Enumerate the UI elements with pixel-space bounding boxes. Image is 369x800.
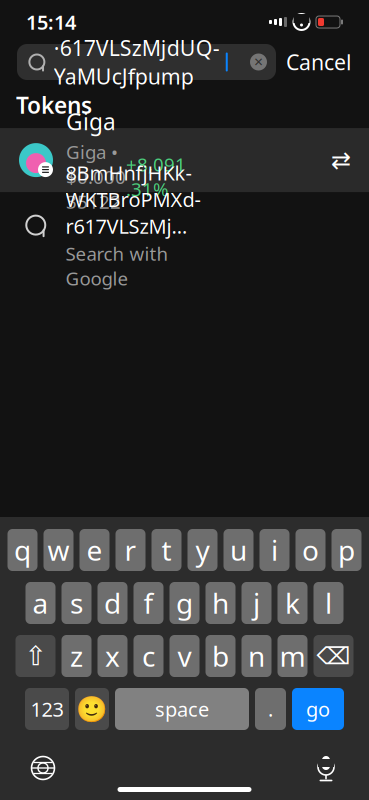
staticText: h [212, 584, 229, 622]
staticText: l [325, 584, 332, 622]
button[interactable]: m [277, 635, 307, 677]
staticText: w [47, 531, 69, 569]
staticText: ⌫ [316, 642, 350, 670]
staticText: x [105, 637, 120, 675]
staticText: y [195, 531, 209, 569]
button[interactable]: Cancel [286, 48, 352, 76]
staticText: ⇧ [24, 641, 46, 671]
button[interactable]: Clear text [250, 53, 267, 70]
button[interactable]: Shift [15, 635, 55, 677]
button[interactable]: k [277, 582, 307, 624]
staticText: i [271, 531, 278, 569]
staticText: u [230, 531, 247, 569]
button[interactable]: Emoji [75, 688, 109, 730]
staticText: j [253, 584, 260, 622]
staticText: t [161, 531, 171, 569]
button[interactable]: c [133, 635, 163, 677]
button[interactable]: q [7, 529, 37, 571]
staticText: e [86, 531, 102, 569]
staticText: Cancel [286, 48, 352, 76]
staticText: z [70, 637, 83, 675]
button[interactable]: . [255, 688, 286, 730]
staticText: 8BmHnfjHKkWKTBroPMXdr617VLSzMj… [65, 159, 200, 239]
button[interactable]: n [241, 635, 271, 677]
button[interactable]: y [187, 529, 217, 571]
button[interactable]: l [313, 582, 343, 624]
staticText: o [302, 531, 319, 569]
button[interactable]: Dictation [309, 751, 343, 785]
staticText: r [124, 531, 136, 569]
staticText: 🙂 [76, 694, 108, 723]
staticText: Tokens [16, 90, 92, 120]
button[interactable]: 8BmHnfjHKkWKTBroPMXdr617VLSzMj… [0, 192, 369, 258]
staticText: n [248, 637, 265, 675]
button[interactable]: w [43, 529, 73, 571]
button[interactable]: a [25, 582, 55, 624]
staticText: f [143, 584, 153, 622]
staticText: Giga [66, 106, 116, 136]
button[interactable]: i [259, 529, 289, 571]
staticText: go [306, 696, 330, 722]
button[interactable]: 123 [25, 688, 69, 730]
button[interactable]: x [97, 635, 127, 677]
button[interactable]: Delete [313, 635, 353, 677]
button[interactable]: z [61, 635, 91, 677]
button[interactable]: t [151, 529, 181, 571]
staticText: g [176, 584, 193, 622]
button[interactable]: space [115, 688, 249, 730]
staticText: k [285, 584, 300, 622]
button[interactable]: f [133, 582, 163, 624]
staticText: q [14, 531, 31, 569]
staticText: space [155, 696, 209, 722]
staticText: Giga • $0.00035122 [66, 139, 126, 214]
staticText: . [268, 696, 273, 722]
button[interactable]: Next keyboard [26, 751, 60, 785]
staticText: 15:14 [26, 9, 76, 35]
staticText: a [32, 584, 48, 622]
staticText: s [70, 584, 83, 622]
button[interactable]: p [331, 529, 361, 571]
staticText: +8,091.31% [126, 152, 186, 201]
button[interactable]: go [292, 688, 344, 730]
staticText: ·617VLSzMjdUQYaMUcJfpump [54, 34, 220, 90]
staticText: Search with Google [65, 241, 168, 291]
button[interactable]: o [295, 529, 325, 571]
button[interactable]: e [79, 529, 109, 571]
button[interactable]: b [205, 635, 235, 677]
staticText: b [212, 637, 229, 675]
button[interactable]: j [241, 582, 271, 624]
button[interactable]: u [223, 529, 253, 571]
button[interactable]: r [115, 529, 145, 571]
staticText: ⇄ [331, 146, 351, 174]
staticText: p [338, 531, 355, 569]
staticText: c [142, 637, 155, 675]
staticText: v [177, 637, 191, 675]
button[interactable]: v [169, 635, 199, 677]
staticText: 123 [30, 696, 63, 722]
staticText: ✕ [253, 55, 263, 69]
button[interactable]: g [169, 582, 199, 624]
button[interactable]: h [205, 582, 235, 624]
staticText: d [104, 584, 121, 622]
button[interactable]: d [97, 582, 127, 624]
button[interactable]: Giga [0, 128, 369, 192]
button[interactable]: s [61, 582, 91, 624]
staticText: m [279, 637, 305, 675]
